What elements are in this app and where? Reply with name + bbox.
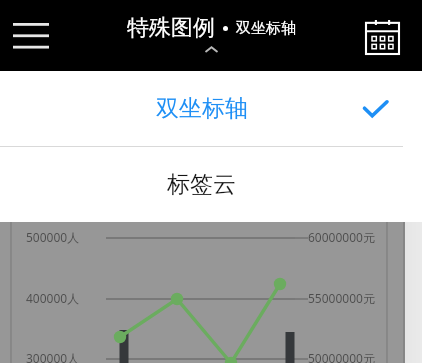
staticText: 400000人 — [26, 290, 80, 306]
staticText: 55000000元 — [308, 290, 375, 306]
staticText: 300000人 — [26, 350, 80, 363]
staticText: 双坐标轴 — [156, 94, 248, 123]
button[interactable]: Calendar — [358, 12, 406, 60]
button[interactable]: 特殊图例 — [127, 14, 296, 54]
other: Selected — [359, 93, 391, 125]
staticText: 60000000元 — [308, 229, 375, 245]
button[interactable]: Open navigation drawer — [4, 9, 58, 63]
button[interactable]: 标签云 — [0, 147, 403, 222]
staticText: 特殊图例 — [127, 14, 215, 42]
staticText: 标签云 — [167, 170, 236, 199]
button[interactable]: 双坐标轴 — [0, 71, 403, 146]
staticText: 50000000元 — [308, 350, 375, 363]
staticText: 500000人 — [26, 229, 80, 245]
staticText: 双坐标轴 — [236, 19, 296, 38]
